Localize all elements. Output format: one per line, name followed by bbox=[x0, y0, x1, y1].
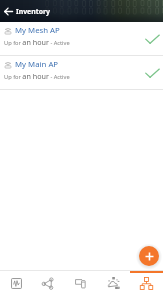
button[interactable]: Add bbox=[139, 246, 159, 266]
staticText: My Main AP bbox=[15, 59, 59, 70]
button[interactable]: My Main AP bbox=[0, 56, 163, 90]
staticText: Up for an hour - Active bbox=[4, 37, 70, 47]
button[interactable]: Cloud bbox=[97, 271, 130, 296]
button[interactable]: My Mesh AP bbox=[0, 22, 163, 56]
button[interactable]: Devices bbox=[64, 271, 97, 296]
staticText: My Mesh AP bbox=[15, 25, 60, 36]
button[interactable]: Monitoring bbox=[0, 271, 32, 296]
button[interactable]: Back bbox=[0, 3, 16, 19]
button[interactable]: Inventory bbox=[130, 271, 163, 296]
button[interactable]: Network bbox=[32, 271, 64, 296]
staticText: Inventory bbox=[16, 7, 50, 16]
staticText: Up for an hour - Active bbox=[4, 71, 70, 81]
